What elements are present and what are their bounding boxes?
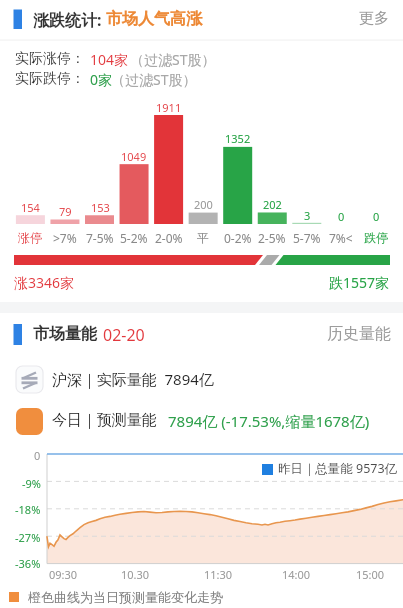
- staticText: 79: [59, 204, 72, 219]
- staticText: 7%<: [329, 230, 353, 246]
- staticText: （过滤ST股）: [130, 50, 216, 69]
- staticText: 0-2%: [224, 230, 252, 246]
- staticText: 202: [263, 197, 282, 212]
- button[interactable]: 更多: [359, 9, 399, 28]
- staticText: 涨停: [18, 230, 42, 245]
- staticText: （过滤ST股）: [111, 70, 197, 89]
- staticText: 平: [197, 230, 209, 245]
- staticText: 跌停: [364, 230, 388, 245]
- staticText: 14:00: [282, 567, 311, 582]
- button[interactable]: [0, 406, 403, 437]
- staticText: 1911: [156, 100, 182, 115]
- staticText: 今日｜预测量能: [52, 411, 157, 430]
- staticText: 市场量能: [33, 324, 97, 344]
- staticText: 0: [338, 209, 345, 224]
- staticText: 更多: [359, 9, 389, 28]
- staticText: 7-5%: [86, 230, 114, 246]
- staticText: 09:30: [49, 567, 78, 582]
- staticText: -9%: [22, 476, 41, 491]
- staticText: 104家: [90, 50, 129, 69]
- staticText: 沪深｜实际量能 7894亿: [52, 369, 214, 389]
- button[interactable]: 历史量能: [327, 324, 391, 344]
- staticText: 涨3346家: [14, 273, 75, 292]
- staticText: -18%: [15, 502, 41, 517]
- staticText: 昨日｜总量能 9573亿: [278, 460, 398, 477]
- staticText: 02-20: [103, 324, 145, 346]
- staticText: >7%: [53, 230, 77, 246]
- staticText: 2-0%: [155, 230, 183, 246]
- staticText: 154: [21, 200, 40, 215]
- staticText: 1049: [121, 149, 147, 164]
- staticText: 200: [194, 197, 213, 212]
- staticText: 11:30: [204, 567, 233, 582]
- staticText: 10.30: [121, 567, 150, 582]
- staticText: 0: [34, 448, 41, 463]
- staticText: 15:00: [356, 567, 385, 582]
- staticText: 3: [304, 208, 311, 223]
- staticText: -36%: [15, 556, 41, 571]
- staticText: 0: [373, 209, 380, 224]
- staticText: 5-2%: [120, 230, 148, 246]
- staticText: 5-7%: [293, 230, 321, 246]
- staticText: 2-5%: [258, 230, 286, 246]
- staticText: 实际涨停：: [15, 50, 85, 68]
- staticText: 跌1557家: [329, 273, 390, 292]
- staticText: 历史量能: [327, 324, 391, 344]
- staticText: 实际跌停：: [15, 70, 85, 88]
- staticText: 涨跌统计:: [33, 9, 102, 31]
- staticText: -27%: [15, 530, 41, 545]
- button[interactable]: [0, 364, 403, 395]
- staticText: 市场人气高涨: [106, 9, 202, 29]
- staticText: 1352: [225, 131, 251, 146]
- staticText: 7894亿 (-17.53%,缩量1678亿): [168, 411, 370, 431]
- staticText: 153: [91, 200, 110, 215]
- staticText: 0家: [90, 70, 113, 89]
- staticText: 橙色曲线为当日预测量能变化走势: [28, 589, 223, 605]
